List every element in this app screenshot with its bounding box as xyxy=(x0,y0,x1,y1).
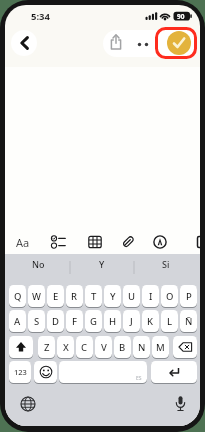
button[interactable]: K xyxy=(142,310,159,332)
button[interactable]: Ñ xyxy=(180,310,197,332)
button[interactable]: P xyxy=(180,285,197,307)
button[interactable]: G xyxy=(85,310,102,332)
staticText: 123 xyxy=(14,367,27,377)
button[interactable]: I xyxy=(142,285,159,307)
staticText: C xyxy=(81,341,88,354)
button[interactable]: Si xyxy=(162,258,170,270)
button[interactable] xyxy=(107,33,126,53)
button[interactable] xyxy=(50,234,67,250)
staticText: A xyxy=(14,315,21,328)
button[interactable]: J xyxy=(123,310,140,332)
button[interactable]: F xyxy=(66,310,83,332)
button[interactable]: B xyxy=(114,336,131,358)
button[interactable]: L xyxy=(161,310,178,332)
staticText: Q xyxy=(14,290,22,303)
staticText: Ñ xyxy=(185,315,193,328)
button[interactable] xyxy=(121,234,135,250)
button[interactable] xyxy=(167,31,191,55)
button[interactable]: V xyxy=(95,336,112,358)
button[interactable]: W xyxy=(28,285,45,307)
button[interactable] xyxy=(174,395,187,414)
button[interactable]: ES xyxy=(59,361,147,383)
button[interactable]: No xyxy=(32,258,45,270)
button[interactable]: Z xyxy=(38,336,55,358)
button[interactable]: U xyxy=(123,285,140,307)
staticText: X xyxy=(63,341,69,354)
staticText: P xyxy=(186,290,192,303)
staticText: F xyxy=(72,315,78,328)
staticText: H xyxy=(109,315,117,328)
button[interactable] xyxy=(34,361,57,383)
button[interactable]: Q xyxy=(9,285,26,307)
button[interactable]: H xyxy=(104,310,121,332)
staticText: G xyxy=(90,315,97,328)
button[interactable]: T xyxy=(85,285,102,307)
button[interactable]: O xyxy=(161,285,178,307)
staticText: S xyxy=(34,315,40,328)
staticText: T xyxy=(91,290,97,303)
staticText: R xyxy=(71,290,78,303)
staticText: L xyxy=(167,315,173,328)
button[interactable] xyxy=(133,37,153,51)
staticText: Y xyxy=(110,290,116,303)
button[interactable]: E xyxy=(47,285,64,307)
staticText: 5:34 xyxy=(31,10,50,23)
button[interactable]: Y xyxy=(104,285,121,307)
staticText: K xyxy=(147,315,154,328)
button[interactable]: C xyxy=(76,336,93,358)
button[interactable]: M xyxy=(152,336,169,358)
button[interactable]: N xyxy=(133,336,150,358)
button[interactable] xyxy=(173,336,197,358)
button[interactable]: D xyxy=(47,310,64,332)
staticText: E xyxy=(53,290,59,303)
staticText: V xyxy=(101,341,107,354)
button[interactable]: Aa xyxy=(16,235,30,250)
staticText: ES xyxy=(136,375,142,382)
staticText: B xyxy=(119,341,126,354)
staticText: W xyxy=(32,290,41,303)
button[interactable]: Y xyxy=(99,258,105,270)
staticText: O xyxy=(166,290,174,303)
staticText: U xyxy=(128,290,136,303)
button[interactable]: R xyxy=(66,285,83,307)
staticText: J xyxy=(130,315,133,328)
staticText: Z xyxy=(44,341,50,354)
button[interactable]: S xyxy=(28,310,45,332)
button[interactable] xyxy=(19,395,37,413)
staticText: M xyxy=(156,341,165,354)
button[interactable] xyxy=(151,361,197,383)
button[interactable] xyxy=(9,336,33,358)
button[interactable]: X xyxy=(57,336,74,358)
button[interactable] xyxy=(11,30,37,56)
button[interactable]: A xyxy=(9,310,26,332)
button[interactable] xyxy=(88,235,102,249)
staticText: D xyxy=(52,315,59,328)
staticText: I xyxy=(149,290,153,303)
button[interactable] xyxy=(153,235,167,249)
button[interactable]: 123 xyxy=(9,361,31,383)
staticText: 90 xyxy=(177,12,185,21)
staticText: N xyxy=(138,341,146,354)
